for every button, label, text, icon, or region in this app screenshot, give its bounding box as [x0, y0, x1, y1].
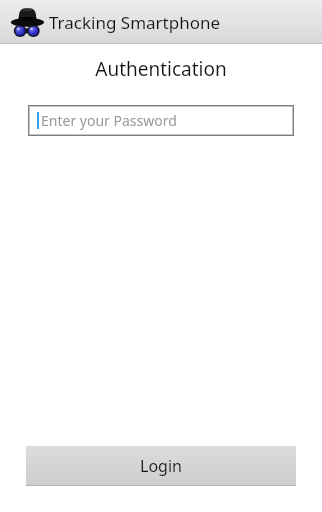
button[interactable]: Login	[26, 446, 296, 486]
button[interactable]: Enter your Password	[28, 105, 294, 136]
staticText: Authentication	[0, 56, 322, 82]
other: Tracking Smartphone app icon	[9, 5, 46, 40]
staticText: Enter your Password	[41, 111, 177, 130]
staticText: Tracking Smartphone	[49, 11, 221, 34]
staticText: Login	[140, 455, 182, 477]
